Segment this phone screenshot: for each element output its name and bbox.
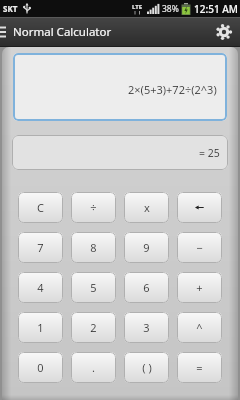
- staticText: ÷: [90, 200, 97, 215]
- staticText: ^: [196, 320, 203, 335]
- staticText: +: [196, 280, 203, 295]
- button[interactable]: C: [18, 192, 63, 223]
- button[interactable]: 3: [124, 312, 169, 343]
- staticText: 9: [143, 240, 150, 255]
- button[interactable]: 5: [71, 272, 116, 303]
- staticText: 1: [37, 320, 44, 335]
- button[interactable]: [177, 192, 222, 223]
- staticText: 6: [143, 280, 150, 295]
- staticText: = 25: [199, 146, 220, 160]
- button[interactable]: 0: [18, 352, 63, 383]
- staticText: 5: [90, 280, 97, 295]
- button[interactable]: 4: [18, 272, 63, 303]
- staticText: 38%: [162, 3, 179, 15]
- staticText: SKT: [3, 3, 18, 14]
- staticText: 3: [143, 320, 150, 335]
- button[interactable]: [0, 17, 10, 47]
- staticText: =: [196, 360, 203, 375]
- button[interactable]: 7: [18, 232, 63, 263]
- button[interactable]: 2: [71, 312, 116, 343]
- staticText: 2: [90, 320, 97, 335]
- button[interactable]: −: [177, 232, 222, 263]
- staticText: .: [92, 360, 95, 375]
- staticText: 12:51 AM: [194, 2, 238, 16]
- button[interactable]: .: [71, 352, 116, 383]
- staticText: −: [196, 240, 203, 255]
- staticText: 4: [37, 280, 44, 295]
- button[interactable]: ^: [177, 312, 222, 343]
- button[interactable]: x: [124, 192, 169, 223]
- button[interactable]: 1: [18, 312, 63, 343]
- button[interactable]: [215, 23, 233, 41]
- staticText: 7: [37, 240, 44, 255]
- staticText: C: [37, 200, 44, 215]
- staticText: 8: [90, 240, 97, 255]
- button[interactable]: 2×(5+3)+72÷(2^3): [13, 53, 227, 121]
- button[interactable]: +: [177, 272, 222, 303]
- staticText: 2×(5+3)+72÷(2^3): [128, 82, 217, 97]
- staticText: x: [144, 200, 150, 215]
- button[interactable]: ÷: [71, 192, 116, 223]
- staticText: 0: [37, 360, 44, 375]
- button[interactable]: =: [177, 352, 222, 383]
- button[interactable]: ( ): [124, 352, 169, 383]
- staticText: ( ): [142, 360, 152, 375]
- staticText: Normal Calculator: [13, 24, 112, 40]
- staticText: LTE: [132, 3, 143, 11]
- button[interactable]: 8: [71, 232, 116, 263]
- button[interactable]: 9: [124, 232, 169, 263]
- button[interactable]: 6: [124, 272, 169, 303]
